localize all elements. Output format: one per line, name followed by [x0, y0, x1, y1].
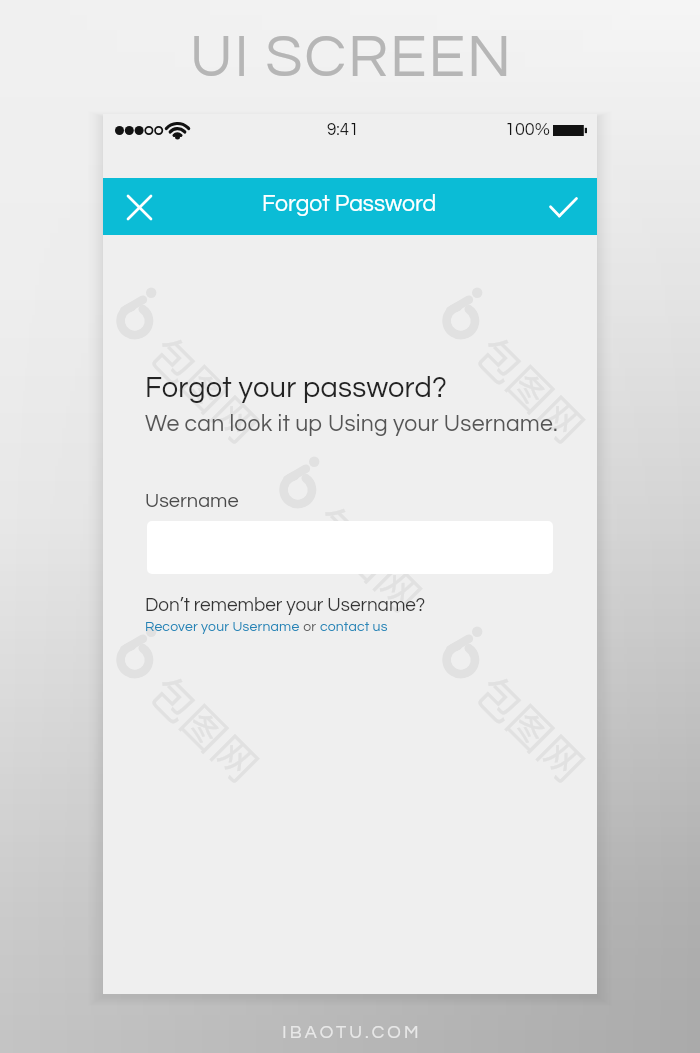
staticText: 100% [505, 120, 550, 139]
staticText: 网 [527, 381, 600, 454]
staticText: Forgot your password? [145, 373, 448, 403]
staticText: 图 [333, 520, 406, 593]
staticText: 图 [170, 690, 243, 763]
staticText: 图 [170, 351, 243, 424]
staticText: 网 [364, 550, 437, 623]
staticText: 包 [139, 322, 212, 395]
staticText: 包 [465, 322, 538, 395]
staticText: 网 [201, 381, 274, 454]
staticText: 网 [527, 720, 600, 793]
staticText: IBAOTU.COM [282, 1023, 422, 1042]
staticText: 包 [139, 661, 212, 734]
staticText: 图 [496, 690, 569, 763]
staticText: Forgot Password [262, 192, 437, 216]
staticText: 图 [496, 351, 569, 424]
staticText: 网 [201, 720, 274, 793]
staticText: 包 [302, 491, 375, 564]
button[interactable]: Close [111, 179, 167, 235]
button[interactable]: contact us [320, 620, 388, 634]
staticText: 包 [465, 661, 538, 734]
staticText: Don’t remember your Username? [145, 595, 426, 615]
staticText: 9:41 [327, 121, 359, 139]
button[interactable]: Confirm [535, 179, 591, 235]
staticText: or [300, 620, 320, 634]
staticText: Username [145, 491, 239, 512]
staticText: UI SCREEN [190, 27, 513, 89]
staticText: We can look it up Using your Username. [145, 412, 558, 436]
button[interactable]: Recover your Username [145, 620, 300, 634]
